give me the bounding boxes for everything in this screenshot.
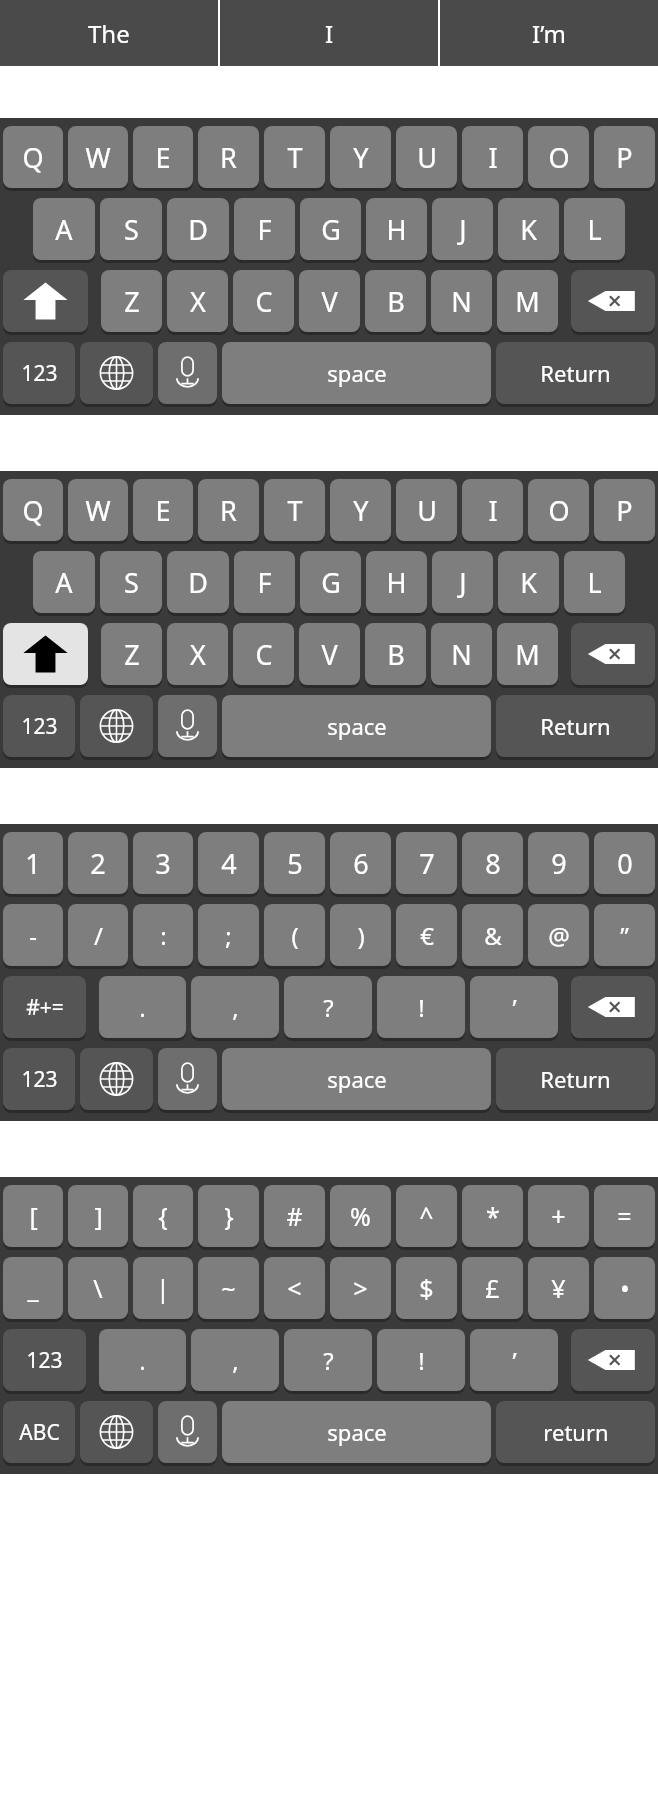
button[interactable]: ? <box>284 976 372 1041</box>
button[interactable]: @ <box>528 904 589 969</box>
button[interactable]: 123 <box>3 1048 75 1113</box>
button[interactable]: U <box>396 126 457 191</box>
button[interactable]: + <box>528 1185 589 1250</box>
button[interactable]: = <box>594 1185 655 1250</box>
button[interactable]: Delete <box>571 270 655 335</box>
button[interactable]: M <box>497 270 558 335</box>
button[interactable]: ’ <box>470 976 558 1041</box>
button[interactable]: & <box>462 904 523 969</box>
button[interactable]: D <box>167 551 229 616</box>
button[interactable]: { <box>133 1185 193 1250</box>
button[interactable]: . <box>99 976 186 1041</box>
button[interactable]: L <box>564 198 625 263</box>
button[interactable]: R <box>198 126 259 191</box>
button[interactable]: W <box>68 479 128 544</box>
button[interactable]: K <box>498 551 559 616</box>
button[interactable]: E <box>133 479 193 544</box>
button[interactable]: Switch keyboard language <box>80 1048 153 1113</box>
button[interactable]: F <box>234 198 295 263</box>
button[interactable]: A <box>33 551 95 616</box>
button[interactable]: ABC <box>3 1401 75 1466</box>
button[interactable]: ^ <box>396 1185 457 1250</box>
button[interactable]: H <box>366 198 427 263</box>
button[interactable]: #+= <box>3 976 86 1041</box>
button[interactable]: I’m <box>440 0 658 66</box>
button[interactable]: _ <box>3 1257 63 1322</box>
button[interactable]: ¥ <box>528 1257 589 1322</box>
button[interactable]: G <box>300 198 361 263</box>
button[interactable]: The <box>0 0 218 66</box>
button[interactable]: Q <box>3 126 63 191</box>
button[interactable]: / <box>68 904 128 969</box>
button[interactable]: 2 <box>68 832 128 897</box>
button[interactable]: 4 <box>198 832 259 897</box>
button[interactable]: Dictation <box>158 1048 217 1113</box>
button[interactable]: G <box>300 551 361 616</box>
button[interactable]: Delete <box>571 976 655 1041</box>
button[interactable]: Switch keyboard language <box>80 342 153 407</box>
button[interactable]: Delete <box>571 623 655 688</box>
button[interactable]: B <box>365 270 426 335</box>
button[interactable]: Return <box>496 342 655 407</box>
button[interactable]: $ <box>396 1257 457 1322</box>
button[interactable]: N <box>431 623 492 688</box>
button[interactable]: . <box>99 1329 186 1394</box>
button[interactable]: Return <box>496 1048 655 1113</box>
button[interactable]: ? <box>284 1329 372 1394</box>
button[interactable]: X <box>167 623 228 688</box>
button[interactable]: 123 <box>3 342 75 407</box>
button[interactable]: I <box>462 479 523 544</box>
button[interactable]: > <box>330 1257 391 1322</box>
button[interactable]: € <box>396 904 457 969</box>
button[interactable]: C <box>233 270 294 335</box>
button[interactable]: space <box>222 695 491 760</box>
button[interactable]: V <box>299 623 360 688</box>
button[interactable]: 0 <box>594 832 655 897</box>
button[interactable]: ) <box>330 904 391 969</box>
button[interactable]: M <box>497 623 558 688</box>
button[interactable]: S <box>100 551 162 616</box>
button[interactable]: ” <box>594 904 655 969</box>
button[interactable]: 5 <box>264 832 325 897</box>
button[interactable]: } <box>198 1185 259 1250</box>
button[interactable]: X <box>167 270 228 335</box>
button[interactable]: T <box>264 479 325 544</box>
button[interactable]: | <box>133 1257 193 1322</box>
button[interactable]: J <box>432 551 493 616</box>
button[interactable]: 3 <box>133 832 193 897</box>
button[interactable]: F <box>234 551 295 616</box>
button[interactable]: V <box>299 270 360 335</box>
button[interactable]: Dictation <box>158 1401 217 1466</box>
button[interactable]: ~ <box>198 1257 259 1322</box>
button[interactable]: £ <box>462 1257 523 1322</box>
button[interactable]: 1 <box>3 832 63 897</box>
button[interactable]: \ <box>68 1257 128 1322</box>
button[interactable]: [ <box>3 1185 63 1250</box>
button[interactable]: D <box>167 198 229 263</box>
button[interactable]: space <box>222 1048 491 1113</box>
button[interactable]: 8 <box>462 832 523 897</box>
button[interactable]: O <box>528 479 589 544</box>
button[interactable]: S <box>100 198 162 263</box>
button[interactable]: K <box>498 198 559 263</box>
button[interactable]: Q <box>3 479 63 544</box>
button[interactable]: : <box>133 904 193 969</box>
button[interactable]: L <box>564 551 625 616</box>
button[interactable]: T <box>264 126 325 191</box>
button[interactable]: C <box>233 623 294 688</box>
button[interactable]: % <box>330 1185 391 1250</box>
button[interactable]: ’ <box>470 1329 558 1394</box>
button[interactable]: , <box>191 976 279 1041</box>
button[interactable]: * <box>462 1185 523 1250</box>
button[interactable]: ] <box>68 1185 128 1250</box>
button[interactable]: Switch keyboard language <box>80 1401 153 1466</box>
button[interactable]: Dictation <box>158 342 217 407</box>
button[interactable]: N <box>431 270 492 335</box>
button[interactable]: I <box>220 0 438 66</box>
button[interactable]: Z <box>101 270 162 335</box>
button[interactable]: I <box>462 126 523 191</box>
button[interactable]: O <box>528 126 589 191</box>
button[interactable]: ( <box>264 904 325 969</box>
button[interactable]: 123 <box>3 1329 86 1394</box>
button[interactable]: H <box>366 551 427 616</box>
